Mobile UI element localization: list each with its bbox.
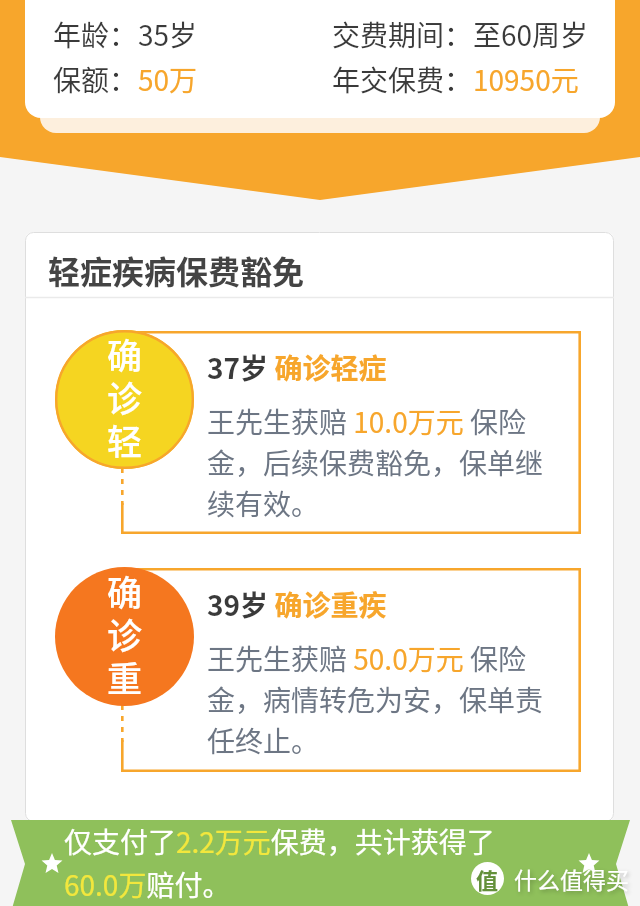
staticText: 王先生获赔 50.0万元 保险	[207, 638, 526, 679]
staticText: 王先生获赔 10.0万元 保险	[207, 401, 526, 442]
staticText: 什么值得买	[514, 862, 629, 895]
staticText: 确	[55, 328, 194, 379]
button[interactable]: 确	[55, 567, 581, 772]
staticText: 轻	[55, 414, 194, 465]
staticText: 确	[55, 565, 194, 616]
staticText: 轻症疾病保费豁免	[48, 247, 305, 293]
staticText: 10950元	[473, 59, 579, 100]
staticText: 保额：	[53, 59, 138, 100]
staticText: 重	[55, 651, 194, 702]
staticText: 60.0万赔付。	[64, 864, 231, 905]
staticText: 39岁 确诊重疾	[207, 584, 387, 625]
staticText: 诊	[55, 608, 194, 659]
button[interactable]: 确	[55, 330, 581, 534]
staticText: 任终止。	[207, 720, 320, 761]
staticText: 年龄：	[53, 14, 138, 55]
staticText: 仅支付了2.2万元保费，共计获得了	[64, 821, 495, 862]
staticText: 37岁 确诊轻症	[207, 347, 387, 388]
staticText: 诊	[55, 371, 194, 422]
staticText: 50万	[138, 59, 198, 100]
staticText: 金，后续保费豁免，保单继	[207, 442, 544, 483]
staticText: 交费期间：	[332, 14, 473, 55]
staticText: 年交保费：	[332, 59, 473, 100]
staticText: 35岁	[138, 14, 198, 55]
staticText: 金，病情转危为安，保单责	[207, 679, 544, 720]
button[interactable]: 理赔总结	[0, 820, 640, 906]
button[interactable]: 轻症疾病保费豁免	[26, 233, 613, 299]
button[interactable]: 保单基本信息	[25, 0, 615, 118]
staticText: 值	[476, 863, 499, 895]
staticText: 续有效。	[207, 483, 320, 524]
staticText: 至60周岁	[473, 14, 589, 55]
